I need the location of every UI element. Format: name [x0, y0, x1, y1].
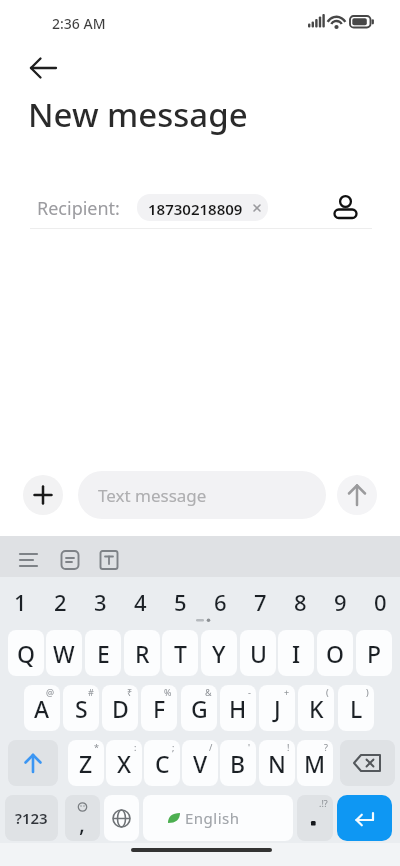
staticText: S [75, 693, 88, 724]
button[interactable]: K [298, 685, 334, 731]
staticText: Recipient: [37, 196, 120, 221]
button[interactable]: 0 [360, 586, 400, 618]
button[interactable] [24, 50, 64, 86]
button[interactable]: P [356, 630, 392, 676]
staticText: 4 [134, 587, 147, 617]
button[interactable] [8, 740, 58, 786]
staticText: A [34, 693, 50, 724]
staticText: W [53, 638, 75, 669]
button[interactable]: 9 [320, 586, 360, 618]
button[interactable]: 8 [280, 586, 320, 618]
staticText: V [193, 748, 208, 779]
button[interactable]: English [143, 795, 293, 841]
staticText: L [350, 693, 363, 724]
staticText: 1 [14, 587, 27, 617]
button[interactable]: Q [8, 630, 44, 676]
staticText: Text message [98, 484, 207, 507]
staticText: ₹ [127, 686, 133, 698]
staticText: ? [324, 741, 328, 753]
staticText: T [174, 638, 187, 669]
staticText: @ [46, 686, 55, 698]
button[interactable]: C [144, 740, 180, 786]
staticText: 5 [174, 587, 187, 617]
staticText: , [79, 808, 86, 838]
button[interactable]: N [259, 740, 295, 786]
button[interactable]: G [181, 685, 217, 731]
staticText: Y [212, 638, 226, 669]
button[interactable]: D [102, 685, 138, 731]
button[interactable]: 2 [40, 586, 80, 618]
button[interactable]: 6 [200, 586, 240, 618]
staticText: F [153, 693, 166, 724]
staticText: New message [28, 92, 248, 137]
staticText: 18730218809 [148, 199, 243, 219]
button[interactable] [97, 548, 121, 572]
button[interactable]: R [124, 630, 160, 676]
staticText: U [250, 638, 267, 669]
button[interactable]: L [338, 685, 374, 731]
button[interactable]: Y [201, 630, 237, 676]
staticText: Z [79, 748, 93, 779]
button[interactable] [58, 548, 82, 572]
button[interactable]: X [106, 740, 142, 786]
button[interactable] [104, 795, 139, 841]
staticText: N [268, 748, 286, 779]
staticText: R [135, 638, 150, 669]
staticText: P [367, 638, 382, 669]
button[interactable] [337, 475, 377, 515]
button[interactable]: 4 [120, 586, 160, 618]
button[interactable]: U [240, 630, 276, 676]
staticText: Q [17, 638, 36, 669]
button[interactable]: W [46, 630, 82, 676]
staticText: J [274, 693, 281, 724]
button[interactable]: 18730218809 [137, 194, 268, 221]
button[interactable]: B [220, 740, 256, 786]
button[interactable]: 5 [160, 586, 200, 618]
staticText: : [134, 741, 137, 753]
button[interactable]: 1 [0, 586, 40, 618]
staticText: / [209, 741, 213, 753]
staticText: E [97, 638, 110, 669]
button[interactable]: M [297, 740, 333, 786]
staticText: 9 [334, 587, 347, 617]
button[interactable]: 3 [80, 586, 120, 618]
button[interactable]: ?123 [5, 795, 58, 841]
button[interactable] [340, 740, 395, 786]
staticText: + [284, 686, 290, 698]
staticText: M [304, 748, 326, 779]
button[interactable] [337, 795, 392, 841]
button[interactable]: Z [68, 740, 104, 786]
button[interactable]: A [24, 685, 60, 731]
staticText: G [191, 693, 208, 724]
button[interactable]: T [162, 630, 198, 676]
staticText: B [230, 748, 246, 779]
button[interactable]: F [141, 685, 177, 731]
button[interactable] [23, 475, 63, 515]
button[interactable] [14, 546, 50, 572]
staticText: O [326, 638, 345, 669]
button[interactable]: Text message [78, 471, 326, 519]
staticText: English [185, 808, 240, 828]
staticText: C [155, 748, 170, 779]
button[interactable]: H [220, 685, 256, 731]
staticText: 2:36 AM [52, 14, 106, 33]
staticText: 6 [214, 587, 227, 617]
button[interactable]: .!? [297, 795, 333, 841]
staticText: # [88, 686, 94, 698]
button[interactable]: , [65, 795, 100, 841]
staticText: ; [172, 741, 175, 753]
staticText: * [94, 741, 99, 753]
button[interactable]: J [259, 685, 295, 731]
button[interactable]: I [278, 630, 314, 676]
button[interactable]: 7 [240, 586, 280, 618]
button[interactable]: V [182, 740, 218, 786]
staticText: 7 [254, 587, 267, 617]
staticText: D [112, 693, 129, 724]
button[interactable]: E [85, 630, 121, 676]
staticText: 8 [294, 587, 307, 617]
button[interactable]: O [317, 630, 353, 676]
staticText: I [292, 638, 301, 669]
button[interactable]: S [63, 685, 99, 731]
staticText: 3 [94, 587, 107, 617]
button[interactable] [330, 190, 362, 224]
